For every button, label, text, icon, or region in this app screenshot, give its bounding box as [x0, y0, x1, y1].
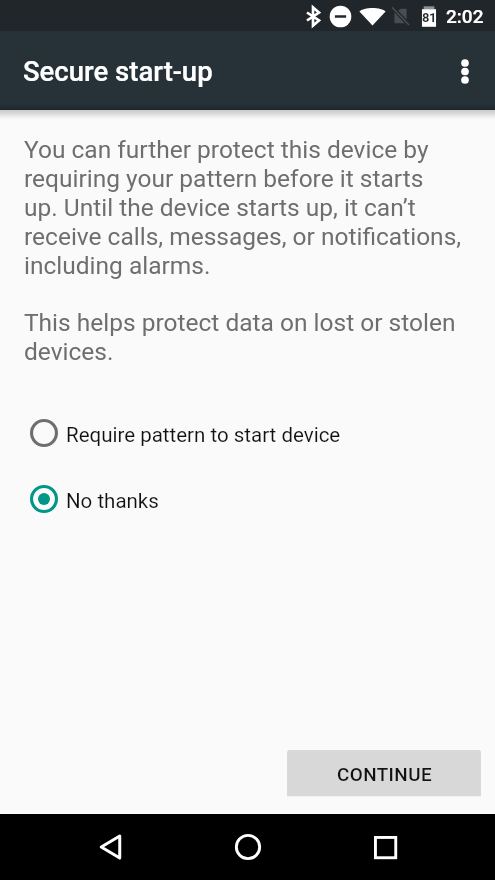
staticText: Require pattern to start device [66, 423, 341, 447]
staticText: No thanks [66, 489, 159, 513]
button[interactable]: Home [224, 823, 272, 871]
staticText: You can further protect this device by r… [24, 135, 462, 280]
staticText: Secure start-up [23, 55, 213, 87]
staticText: CONTINUE [337, 763, 432, 785]
button[interactable]: Back [86, 823, 134, 871]
button[interactable]: CONTINUE [287, 750, 481, 796]
button[interactable]: Require pattern to start device [0, 419, 495, 447]
button[interactable]: No thanks [0, 485, 495, 513]
staticText: 81 [422, 10, 436, 25]
button[interactable]: Recent apps [361, 823, 409, 871]
staticText: 2:02 [446, 5, 484, 27]
button[interactable]: More options [441, 47, 489, 95]
staticText: This helps protect data on lost or stole… [24, 308, 456, 366]
